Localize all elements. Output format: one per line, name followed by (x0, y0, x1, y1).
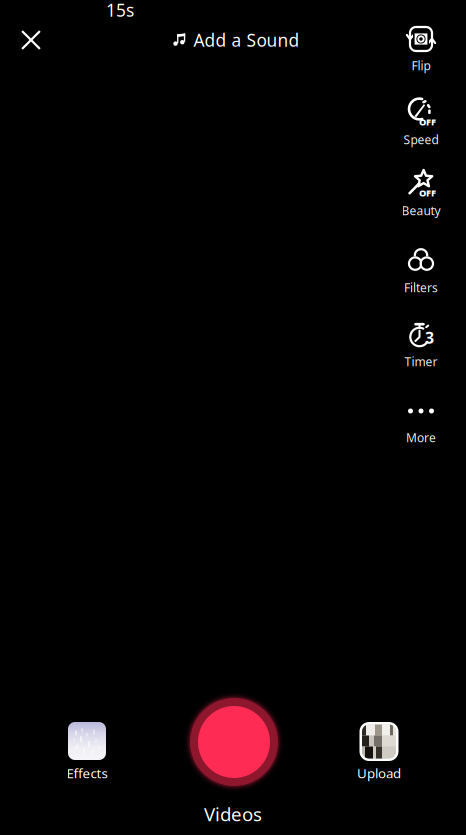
staticText: Filters (404, 279, 438, 295)
staticText: Beauty (401, 202, 440, 218)
staticText: Timer (404, 353, 437, 369)
button[interactable]: Record (182, 690, 286, 794)
button[interactable]: Videos (188, 799, 278, 829)
staticText: Upload (357, 764, 401, 782)
button[interactable]: Effects (51, 722, 123, 780)
button[interactable]: Add a Sound (172, 23, 299, 57)
button[interactable]: Upload (343, 722, 415, 780)
button[interactable]: OFF (392, 166, 450, 220)
button[interactable]: Flip (392, 21, 450, 75)
button[interactable]: 3 (392, 317, 450, 371)
staticText: 15s (106, 0, 134, 21)
staticText: Add a Sound (193, 28, 299, 51)
staticText: 3 (425, 327, 434, 348)
staticText: Videos (204, 802, 262, 826)
staticText: Flip (411, 57, 430, 73)
staticText: OFF (419, 116, 436, 128)
button[interactable]: More (392, 393, 450, 447)
staticText: Speed (403, 131, 438, 147)
button[interactable]: OFF (392, 95, 450, 149)
staticText: More (406, 429, 436, 445)
staticText: OFF (419, 187, 436, 199)
button[interactable]: Filters (392, 243, 450, 297)
button[interactable]: Close (9, 18, 53, 62)
staticText: Effects (66, 764, 107, 782)
